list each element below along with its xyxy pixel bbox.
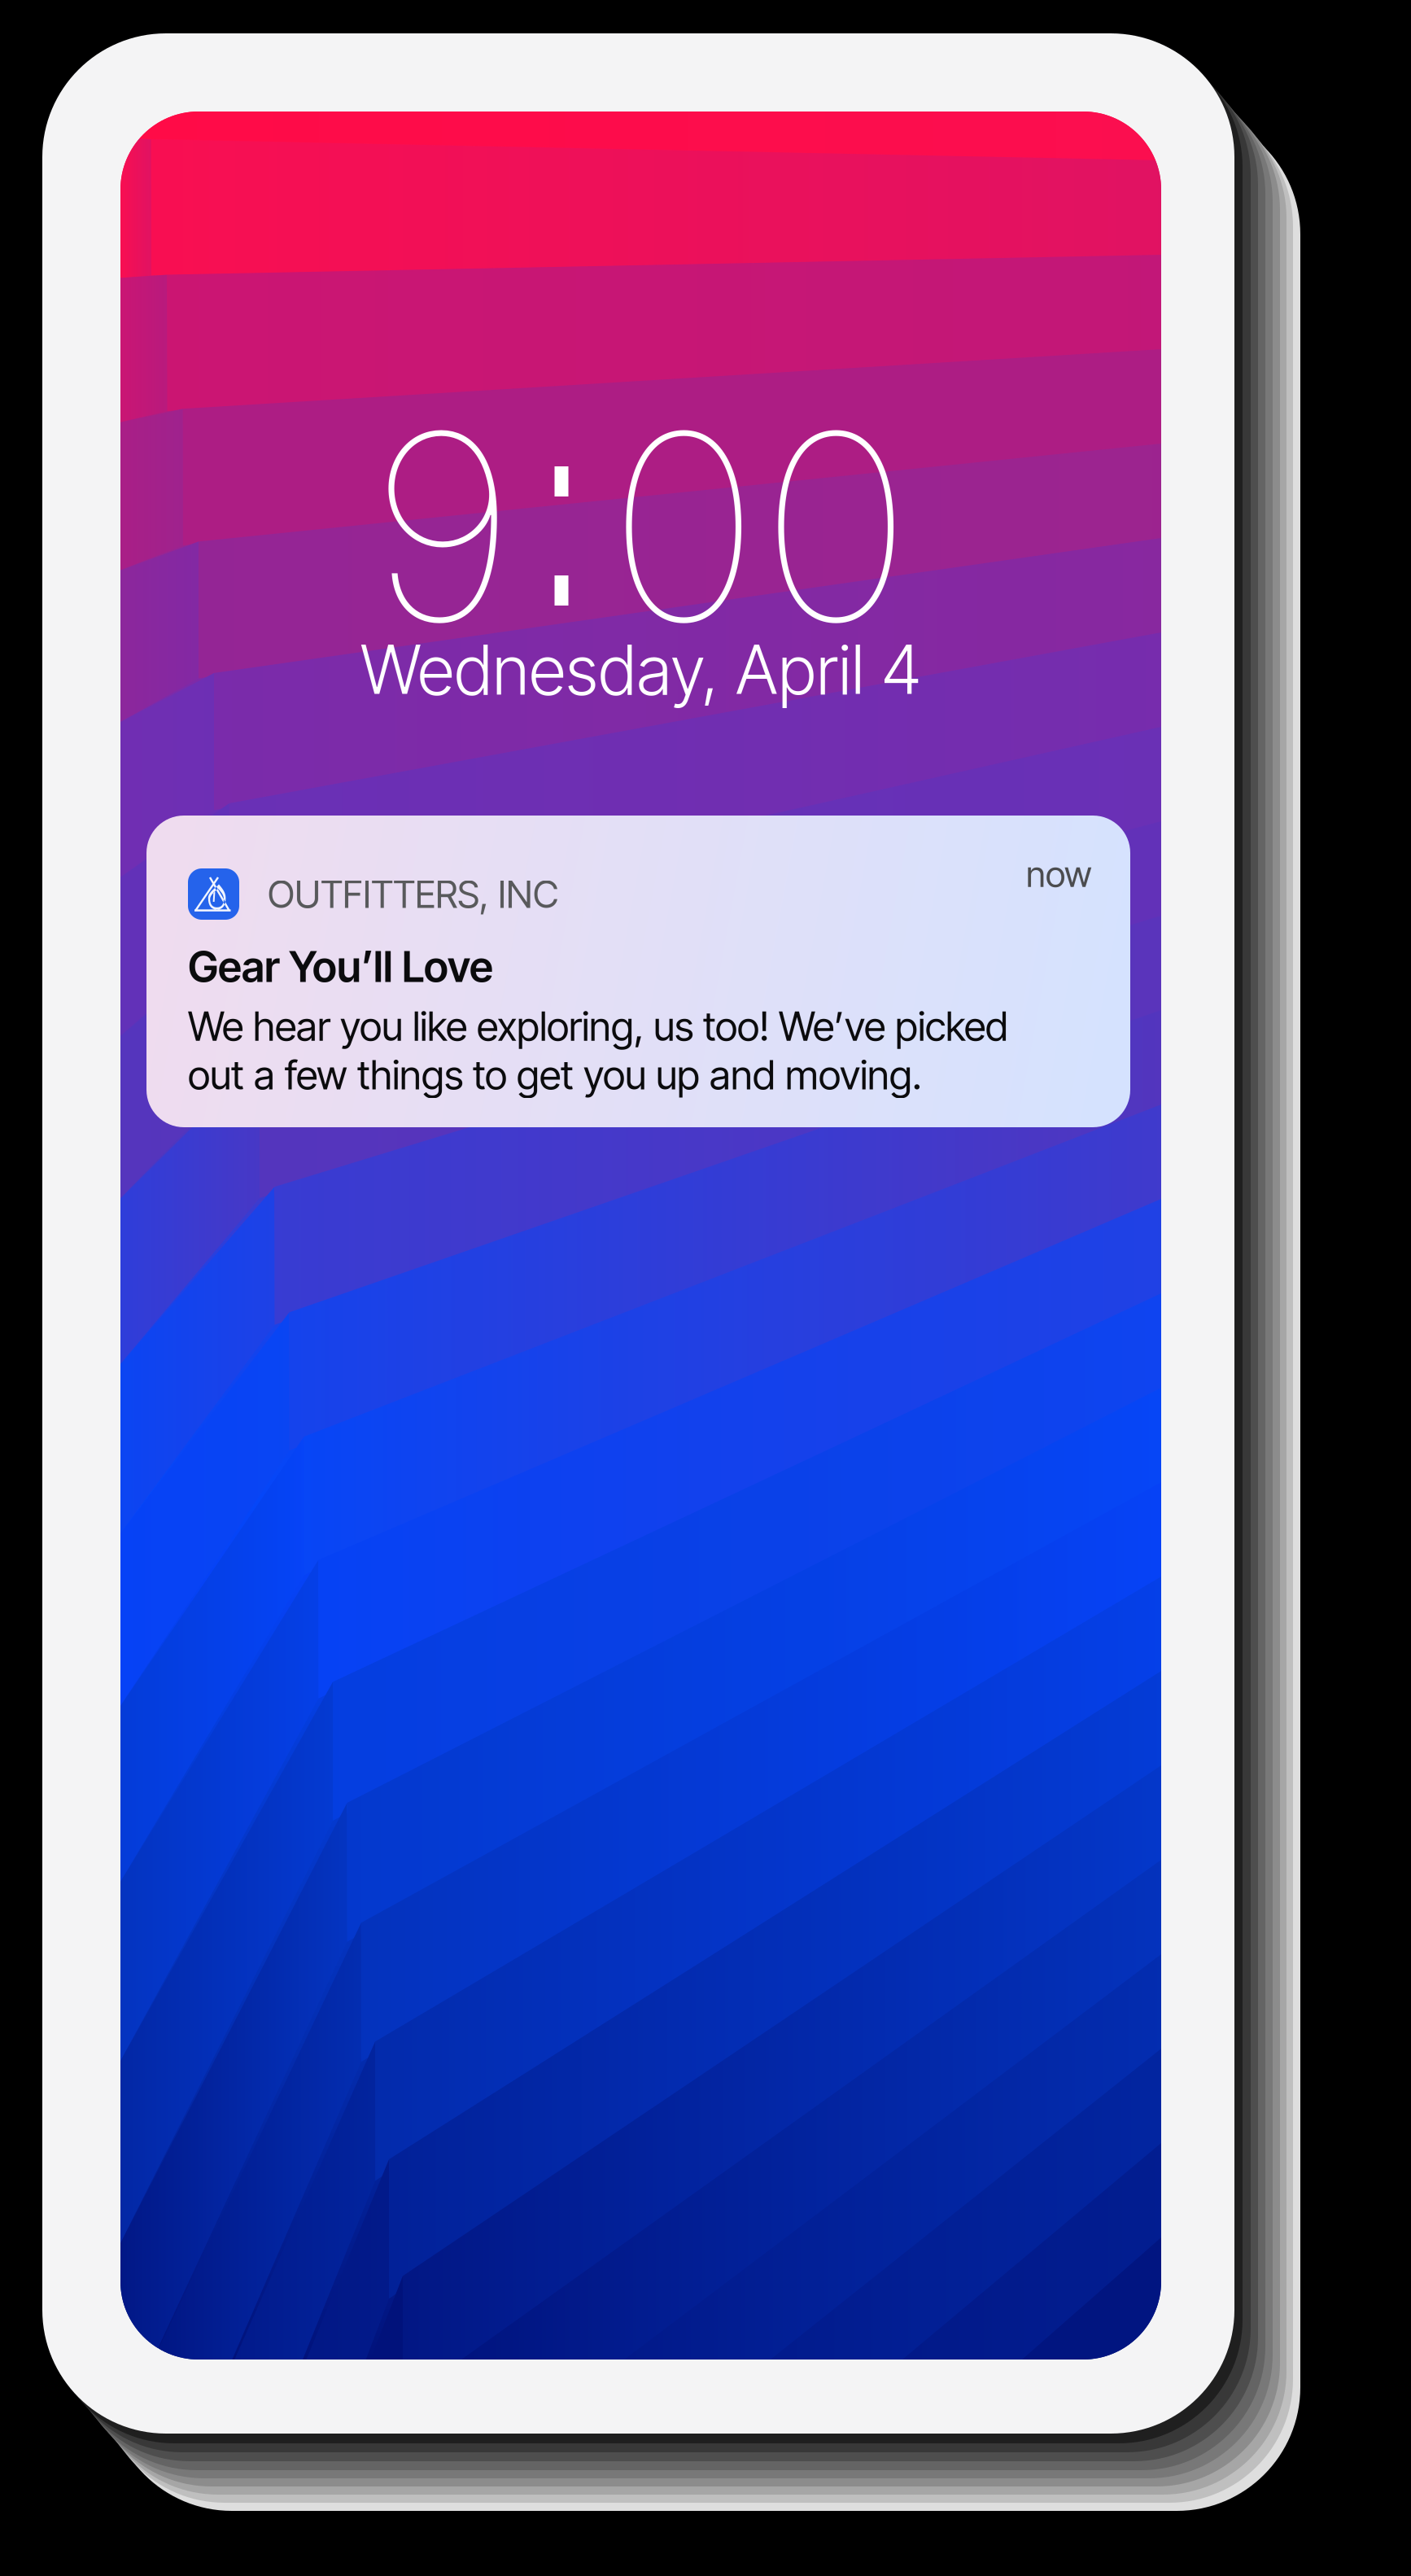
staticText: 9 [370, 370, 515, 683]
staticText: out a few things to get you up and movin… [188, 1050, 922, 1099]
staticText: Wednesday, April 4 [360, 629, 921, 711]
button[interactable]: OUTFITTERS, INC [146, 816, 1130, 1127]
staticText: We hear you like exploring, us too! We’v… [188, 1002, 1008, 1050]
staticText: now [1026, 852, 1092, 895]
staticText: OUTFITTERS, INC [268, 872, 558, 917]
staticText: Gear You’ll Love [188, 941, 493, 992]
staticText: 00 [607, 370, 912, 683]
